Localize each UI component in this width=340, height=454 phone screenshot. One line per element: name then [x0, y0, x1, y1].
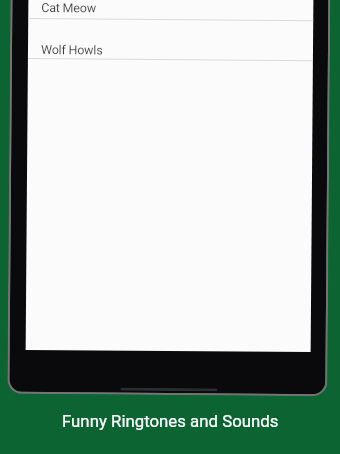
button[interactable]: Wolf Howls — [28, 19, 313, 60]
staticText: Wolf Howls — [41, 42, 103, 57]
staticText: Funny Ringtones and Sounds — [62, 411, 279, 431]
staticText: Cat Meow — [41, 0, 96, 15]
button[interactable]: Cat Meow — [28, 0, 313, 21]
